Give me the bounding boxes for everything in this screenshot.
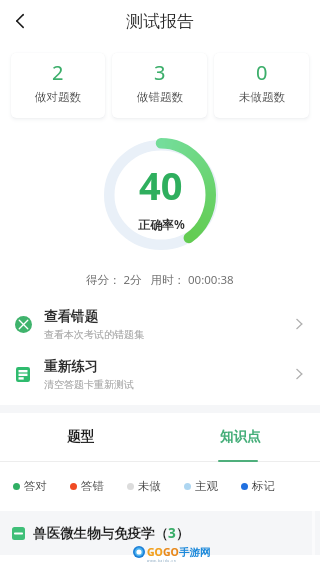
button[interactable]: 知识点 [160, 413, 320, 462]
other: Open [294, 319, 304, 329]
staticText: 题型 [67, 428, 94, 445]
staticText: w w w . b a i d u . c n [147, 559, 176, 563]
button[interactable]: 2 [11, 53, 105, 118]
staticText: 2 [52, 59, 64, 86]
staticText: GOGO手游网 [147, 545, 211, 559]
staticText: 标记 [252, 479, 275, 493]
staticText: 答错 [81, 479, 104, 493]
staticText: 做错题数 [137, 90, 183, 104]
button[interactable]: 3 [112, 53, 207, 118]
button[interactable]: 查看错题 [0, 299, 320, 349]
staticText: 做对题数 [35, 90, 81, 104]
staticText: 查看错题 [44, 308, 98, 325]
staticText: 得分： 2分 用时： 00:00:38 [86, 272, 234, 288]
staticText: 未做题数 [239, 90, 285, 104]
staticText: 清空答题卡重新测试 [44, 378, 134, 391]
button[interactable]: 题型 [0, 413, 160, 462]
staticText: 正确率% [138, 216, 185, 232]
button[interactable]: 未做 [127, 479, 161, 493]
staticText: 40 [139, 159, 183, 211]
button[interactable]: 主观 [184, 479, 218, 493]
button[interactable]: 答错 [70, 479, 104, 493]
button[interactable]: Back [6, 7, 34, 35]
staticText: 主观 [195, 479, 218, 493]
button[interactable]: 标记 [241, 479, 275, 493]
button[interactable]: 答对 [13, 479, 47, 493]
staticText: 重新练习 [44, 358, 98, 375]
staticText: 未做 [138, 479, 161, 493]
button[interactable]: 0 [214, 53, 309, 118]
staticText: 答对 [24, 479, 47, 493]
button[interactable]: 重新练习 [0, 349, 320, 399]
staticText: 3 [154, 59, 166, 86]
staticText: 0 [256, 59, 268, 86]
staticText: 兽医微生物与免疫学（3） [33, 524, 190, 542]
staticText: 查看本次考试的错题集 [44, 328, 144, 341]
staticText: 测试报告 [126, 11, 194, 32]
other: Open [294, 369, 304, 379]
button[interactable]: 兽医微生物与免疫学（3） [12, 511, 320, 555]
staticText: 知识点 [220, 428, 261, 445]
